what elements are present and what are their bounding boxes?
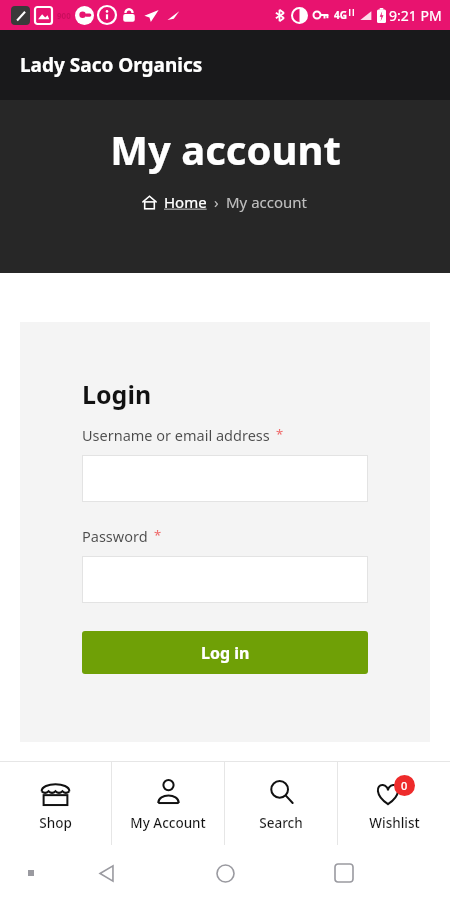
staticText: Log in <box>201 642 250 664</box>
button[interactable] <box>82 556 368 603</box>
button[interactable]: Log in <box>82 631 368 674</box>
staticText: Shop <box>39 814 72 832</box>
staticText: * <box>276 425 284 443</box>
staticText: * <box>154 526 162 544</box>
other: Wishlist <box>373 775 415 809</box>
staticText: 900 <box>57 10 71 21</box>
staticText: › <box>214 192 219 212</box>
staticText: My account <box>110 122 341 176</box>
staticText: My Account <box>130 814 206 832</box>
button[interactable]: Home <box>205 853 245 893</box>
button[interactable]: Recents <box>324 853 364 893</box>
staticText: Search <box>259 814 303 832</box>
other: Search <box>266 777 297 808</box>
staticText: Wishlist <box>369 814 420 832</box>
staticText: Password <box>82 526 148 546</box>
button[interactable]: Shop <box>0 762 111 845</box>
button[interactable]: Search <box>225 762 337 845</box>
staticText: Login <box>82 377 152 411</box>
button[interactable]: Wishlist <box>338 762 450 845</box>
staticText: Username or email address <box>82 425 270 445</box>
other: My Account <box>153 777 184 808</box>
button[interactable] <box>82 455 368 502</box>
staticText: 9:21 PM <box>389 6 442 25</box>
button[interactable]: Home <box>164 192 207 212</box>
button[interactable]: My Account <box>112 762 224 845</box>
other: Shop <box>39 776 72 809</box>
button[interactable]: Back <box>86 853 126 893</box>
staticText: My account <box>226 192 308 212</box>
staticText: 0 <box>401 778 408 793</box>
staticText: Lady Saco Organics <box>20 52 203 78</box>
staticText: 4G <box>334 8 347 22</box>
